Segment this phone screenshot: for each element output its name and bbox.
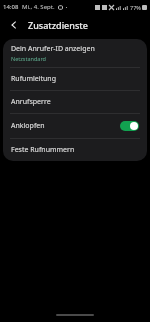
staticText: Feste Rufnummern (11, 145, 75, 155)
staticText: Mi., 4. Sept. (22, 3, 55, 11)
button[interactable]: Feste Rufnummern (3, 139, 147, 161)
staticText: Anrufsperre (11, 97, 51, 107)
button[interactable]: Rufumleitung (3, 68, 147, 90)
staticText: Dein Anrufer-ID anzeigen (11, 44, 95, 54)
button[interactable]: Dein Anrufer-ID anzeigen (3, 39, 147, 67)
button[interactable]: Zurück (6, 17, 22, 33)
staticText: Netzstandard (11, 55, 46, 62)
staticText: 77% (130, 4, 141, 11)
staticText: Rufumleitung (11, 74, 57, 84)
button[interactable]: Anrufsperre (3, 91, 147, 113)
staticText: 14:08 (3, 3, 19, 11)
button[interactable]: Anklopfen (3, 114, 147, 138)
staticText: Anklopfen (11, 121, 120, 131)
staticText: Zusatzdienste (28, 19, 88, 31)
